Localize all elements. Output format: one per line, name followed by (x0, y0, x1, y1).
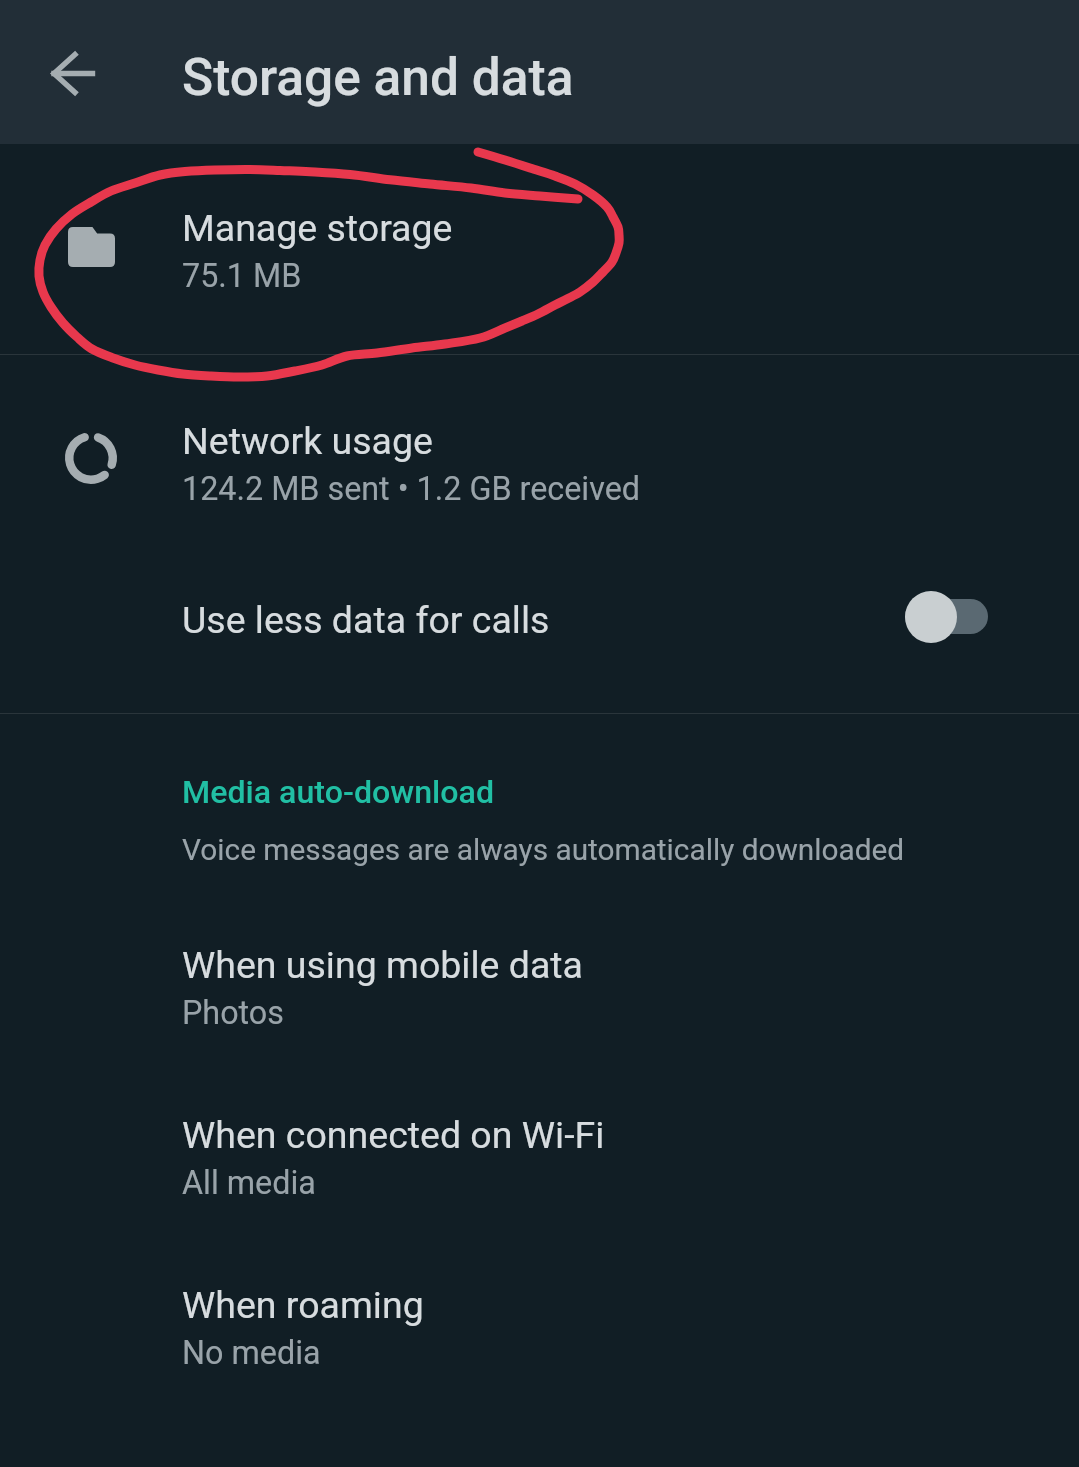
button[interactable]: Use less data for calls (0, 567, 1079, 712)
staticText: Network usage (182, 419, 433, 463)
staticText: No media (182, 1334, 321, 1372)
button[interactable]: Manage storage (0, 146, 1079, 353)
staticText: Storage and data (182, 47, 574, 107)
button[interactable]: When connected on Wi-Fi (0, 1083, 1079, 1243)
staticText: All media (182, 1164, 316, 1202)
button[interactable]: Network usage (0, 356, 1079, 567)
staticText: Photos (182, 994, 284, 1032)
staticText: When connected on Wi-Fi (182, 1113, 605, 1157)
button[interactable]: When roaming (0, 1253, 1079, 1413)
staticText: 124.2 MB sent • 1.2 GB received (182, 470, 640, 508)
staticText: When roaming (182, 1283, 424, 1327)
button[interactable]: Use less data for calls toggle (905, 591, 988, 643)
staticText: Manage storage (182, 206, 453, 250)
button[interactable]: Back (20, 20, 124, 124)
button[interactable]: When using mobile data (0, 913, 1079, 1073)
staticText: Use less data for calls (182, 598, 550, 642)
staticText: Voice messages are always automatically … (182, 832, 905, 867)
staticText: 75.1 MB (182, 257, 302, 295)
staticText: When using mobile data (182, 943, 584, 987)
staticText: Media auto-download (182, 773, 495, 811)
